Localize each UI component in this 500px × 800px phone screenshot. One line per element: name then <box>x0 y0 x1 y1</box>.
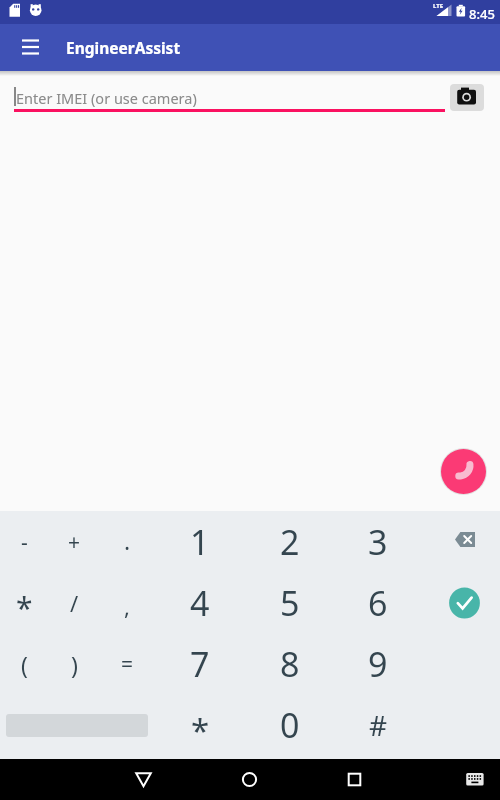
button[interactable]: 3 <box>338 513 418 571</box>
button[interactable]: # <box>338 696 418 754</box>
staticText: * <box>16 587 33 628</box>
staticText: 9 <box>368 641 388 687</box>
staticText: 2 <box>280 519 300 565</box>
button[interactable] <box>462 767 488 791</box>
staticText: 3 <box>368 519 388 565</box>
staticText: + <box>68 528 81 557</box>
staticText: 7 <box>190 641 210 687</box>
staticText: ( <box>21 649 28 680</box>
staticText: - <box>21 528 28 557</box>
button[interactable]: 2 <box>250 513 330 571</box>
staticText: EngineerAssist <box>66 37 181 58</box>
button[interactable]: 8 <box>250 635 330 693</box>
button[interactable]: - <box>1 513 47 571</box>
staticText: 4 <box>190 580 210 626</box>
button[interactable] <box>334 759 375 800</box>
button[interactable]: 1 <box>160 513 240 571</box>
staticText: Enter IMEI (or use camera) <box>16 88 197 108</box>
button[interactable]: ) <box>51 635 97 693</box>
button[interactable]: 7 <box>160 635 240 693</box>
staticText: ) <box>71 649 78 680</box>
button[interactable] <box>441 449 486 494</box>
button[interactable]: ( <box>1 635 47 693</box>
button[interactable] <box>450 84 484 111</box>
button[interactable] <box>123 759 164 800</box>
button[interactable]: 5 <box>250 574 330 632</box>
staticText: 8 <box>280 641 300 687</box>
button[interactable]: 6 <box>338 574 418 632</box>
staticText: # <box>369 706 388 744</box>
staticText: / <box>70 588 79 618</box>
button[interactable]: * <box>1 574 47 632</box>
button[interactable]: / <box>51 574 97 632</box>
button[interactable]: 9 <box>338 635 418 693</box>
button[interactable]: = <box>104 635 150 693</box>
button[interactable] <box>10 35 50 61</box>
staticText: 5 <box>280 580 300 626</box>
button[interactable]: 4 <box>160 574 240 632</box>
button[interactable] <box>229 759 270 800</box>
button[interactable]: , <box>104 574 150 632</box>
button[interactable] <box>447 525 483 558</box>
staticText: 1 <box>190 519 210 565</box>
staticText: , <box>124 591 130 621</box>
button[interactable]: . <box>104 513 150 571</box>
button[interactable]: 0 <box>250 696 330 754</box>
staticText: = <box>121 650 134 679</box>
staticText: 8:45 <box>469 5 495 23</box>
staticText: LTE <box>433 2 444 10</box>
staticText: 0 <box>280 702 300 748</box>
staticText: . <box>124 525 131 556</box>
button[interactable]: + <box>51 513 97 571</box>
staticText: 6 <box>368 580 388 626</box>
button[interactable] <box>447 584 483 622</box>
staticText: * <box>191 708 210 753</box>
button[interactable]: * <box>160 696 240 754</box>
